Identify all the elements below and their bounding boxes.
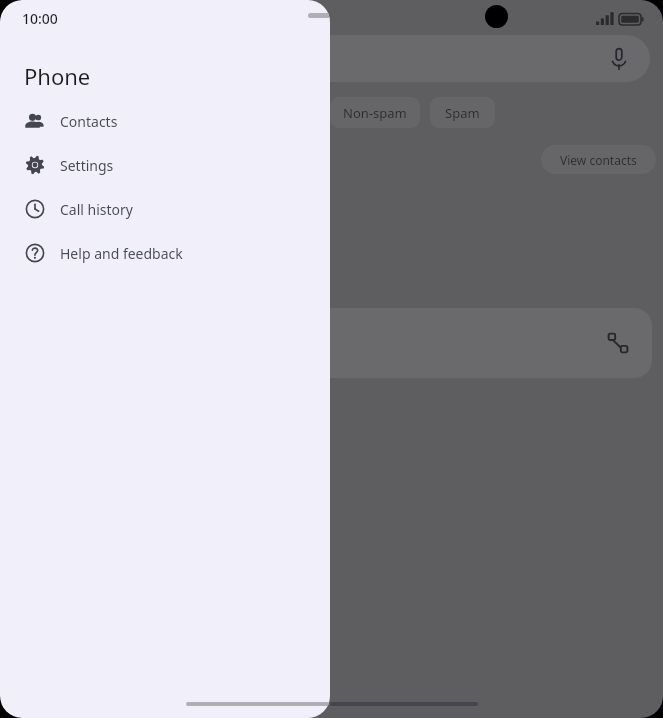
staticText: Settings (60, 156, 114, 175)
button[interactable]: Settings (0, 143, 330, 187)
staticText: Contacts (60, 112, 118, 131)
button[interactable]: View contacts (541, 145, 656, 174)
button[interactable]: Call (12, 308, 652, 378)
staticText: Call history (60, 200, 133, 219)
staticText: Help and feedback (60, 244, 183, 263)
button[interactable]: Contacts (0, 99, 330, 143)
staticText: View contacts (560, 152, 637, 168)
button[interactable]: Call history (0, 187, 330, 231)
button[interactable]: Voice search (606, 46, 632, 72)
button[interactable]: Spam (430, 97, 495, 128)
staticText: Spam (445, 104, 480, 122)
button[interactable]: Help and feedback (0, 231, 330, 275)
button[interactable]: Voice search (12, 35, 650, 82)
staticText: Phone (24, 61, 91, 91)
staticText: 10:00 (22, 9, 58, 28)
staticText: Non-spam (343, 104, 407, 122)
button[interactable]: Call (606, 331, 630, 355)
button[interactable]: Non-spam (330, 97, 420, 128)
